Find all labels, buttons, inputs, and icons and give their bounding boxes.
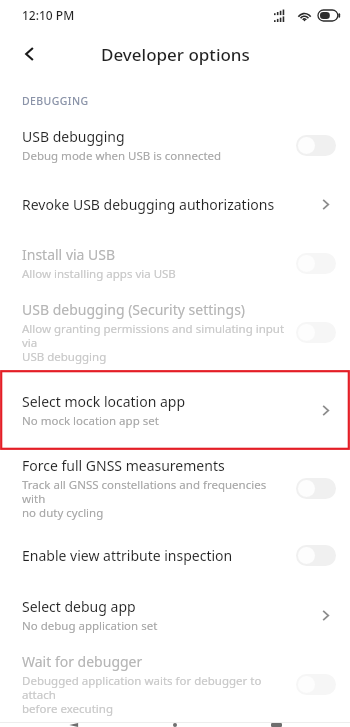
button[interactable]: Home <box>153 723 197 727</box>
staticText: Wait for debugger <box>22 652 143 671</box>
staticText: Allow installing apps via USB <box>22 266 176 282</box>
button[interactable]: Enable view attribute inspection <box>0 526 350 584</box>
staticText: Force full GNSS measurements <box>22 456 225 475</box>
button[interactable]: Toggle <box>296 135 336 156</box>
button[interactable]: Back <box>52 723 96 727</box>
staticText: Install via USB <box>22 245 116 264</box>
button[interactable]: Toggle <box>296 674 336 695</box>
button[interactable]: Select debug app <box>0 584 350 646</box>
staticText: USB debugging <box>22 127 125 146</box>
staticText: Revoke USB debugging authorizations <box>22 195 275 214</box>
staticText: USB debugging (Security settings) <box>22 300 246 319</box>
staticText: 12:10 PM <box>22 7 75 23</box>
staticText: Enable view attribute inspection <box>22 546 233 565</box>
button[interactable]: Select mock location app <box>0 370 350 450</box>
button[interactable]: Recent apps <box>254 723 298 727</box>
button[interactable]: Force full GNSS measurements <box>0 450 350 526</box>
staticText: Track all GNSS constellations and freque… <box>22 477 288 520</box>
button[interactable]: Back <box>8 32 52 76</box>
button[interactable]: USB debugging <box>0 114 350 176</box>
button[interactable]: Toggle <box>296 545 336 566</box>
staticText: No debug application set <box>22 618 158 634</box>
staticText: Debugged application waits for debugger … <box>22 673 288 716</box>
button[interactable]: Toggle <box>296 253 336 274</box>
staticText: Developer options <box>101 43 250 66</box>
staticText: No mock location app set <box>22 413 159 429</box>
button[interactable]: Wait for debugger <box>0 646 350 722</box>
button[interactable]: Toggle <box>296 322 336 343</box>
staticText: Allow granting permissions and simulatin… <box>22 321 288 364</box>
button[interactable]: USB debugging (Security settings) <box>0 294 350 370</box>
staticText: DEBUGGING <box>22 94 89 108</box>
button[interactable]: Toggle <box>296 478 336 499</box>
button[interactable]: Install via USB <box>0 232 350 294</box>
staticText: Debug mode when USB is connected <box>22 148 222 164</box>
button[interactable]: Revoke USB debugging authorizations <box>0 176 350 232</box>
staticText: Select debug app <box>22 597 136 616</box>
staticText: Select mock location app <box>22 392 186 411</box>
